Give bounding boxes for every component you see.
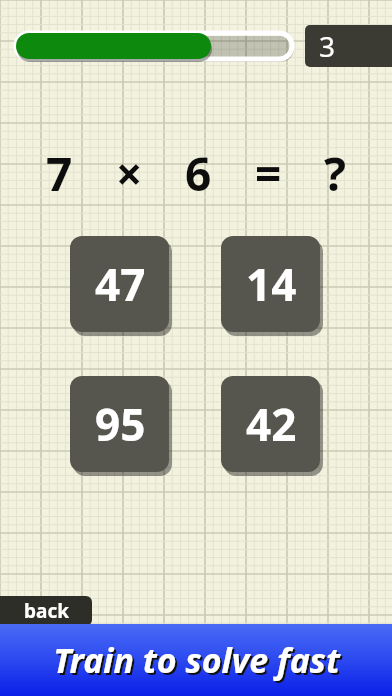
staticText: × (116, 142, 143, 205)
staticText: 6 (185, 142, 212, 205)
staticText: Train to solve fast (53, 637, 340, 683)
staticText: back (24, 598, 69, 624)
button[interactable]: Train to solve fast (0, 624, 392, 696)
staticText: 14 (246, 254, 297, 314)
button[interactable]: 42 (221, 376, 323, 476)
staticText: Train to solve fast (55, 639, 342, 685)
staticText: 3 (319, 27, 336, 65)
button[interactable]: 3 (305, 25, 392, 67)
staticText: 7 (46, 142, 73, 205)
button[interactable]: 14 (221, 236, 323, 336)
button[interactable]: 47 (70, 236, 172, 336)
button[interactable]: back (0, 596, 92, 626)
button[interactable]: 95 (70, 376, 172, 476)
staticText: ? (324, 142, 346, 205)
staticText: 42 (246, 394, 297, 454)
staticText: 95 (95, 394, 146, 454)
staticText: 47 (95, 254, 146, 314)
staticText: = (255, 142, 282, 205)
